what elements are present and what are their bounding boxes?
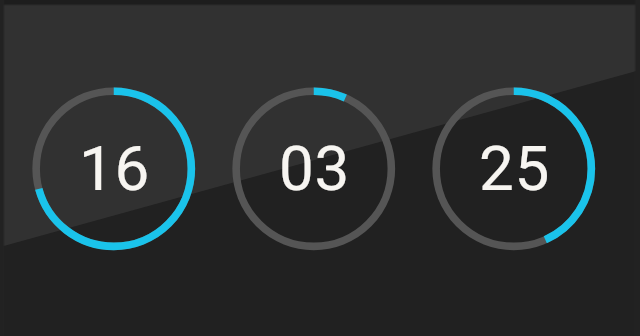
- staticText: 03: [279, 132, 350, 205]
- staticText: 25: [479, 132, 550, 205]
- button[interactable]: Hours, 16: [33, 87, 196, 250]
- staticText: 16: [79, 132, 150, 205]
- button[interactable]: Seconds, 25: [433, 87, 596, 250]
- button[interactable]: Minutes, 03: [233, 87, 396, 250]
